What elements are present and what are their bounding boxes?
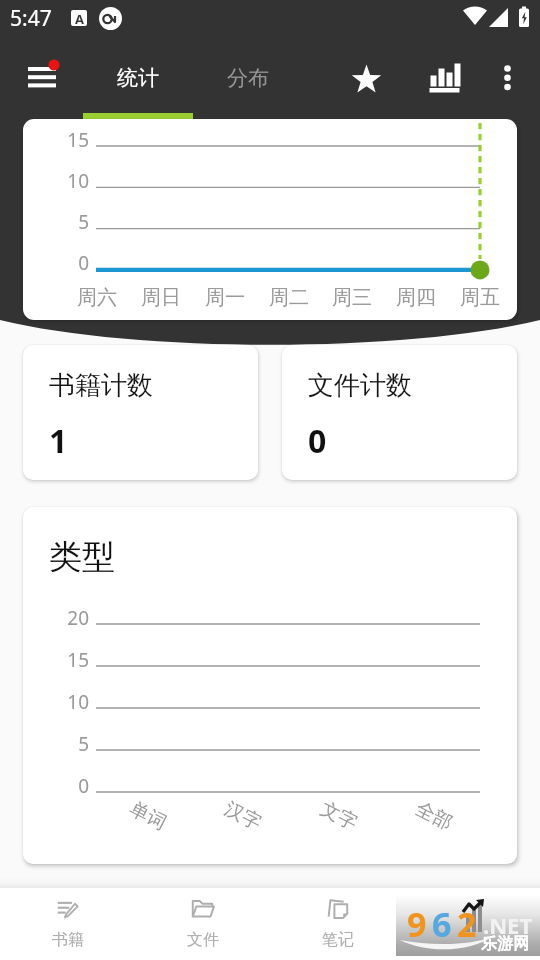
staticText: 乐游网 [481, 934, 529, 954]
staticText: 1 [49, 419, 68, 463]
staticText: 分布 [227, 65, 269, 91]
staticText: 类型 [49, 536, 115, 578]
staticText: 周日 [141, 285, 181, 310]
button[interactable]: Menu [18, 52, 66, 100]
staticText: 9 [407, 901, 427, 947]
button[interactable]: 15 [23, 119, 517, 320]
staticText: 10 [38, 689, 89, 715]
button[interactable]: Favorite [342, 54, 390, 102]
staticText: 文件 [187, 930, 219, 950]
staticText: 笔记 [322, 930, 354, 950]
staticText: 周五 [460, 285, 500, 310]
staticText: 周二 [269, 285, 309, 310]
button[interactable]: Statistics [420, 54, 468, 102]
staticText: 2 [457, 901, 477, 947]
button[interactable]: 笔记 [270, 888, 405, 960]
button[interactable]: 分布 [193, 42, 303, 113]
button[interactable]: 书籍计数 [23, 345, 258, 480]
button[interactable]: More options [483, 54, 531, 102]
staticText: 统计 [117, 65, 159, 91]
staticText: 0 [308, 419, 327, 463]
staticText: 0 [38, 773, 89, 799]
staticText: 文字 [317, 797, 361, 835]
staticText: 周三 [332, 285, 372, 310]
staticText: 文件计数 [308, 369, 412, 402]
staticText: 6 [432, 901, 452, 947]
button[interactable]: 书籍 [0, 888, 135, 960]
button[interactable]: 类型 [23, 507, 517, 864]
button[interactable]: 统计 [83, 42, 193, 113]
staticText: 0 [38, 250, 89, 276]
staticText: 5 [38, 731, 89, 757]
staticText: 单词 [126, 797, 170, 835]
staticText: 书籍计数 [49, 369, 153, 402]
button[interactable]: 文件计数 [282, 345, 517, 480]
staticText: 周四 [396, 285, 436, 310]
staticText: 10 [38, 168, 89, 194]
staticText: 周一 [205, 285, 245, 310]
staticText: A [75, 10, 84, 26]
button[interactable]: 文件 [135, 888, 270, 960]
staticText: .NET [483, 910, 533, 940]
staticText: 15 [38, 647, 89, 673]
staticText: 15 [38, 127, 89, 153]
staticText: 5 [38, 209, 89, 235]
staticText: 周六 [77, 285, 117, 310]
staticText: 书籍 [52, 930, 84, 950]
staticText: 全部 [412, 797, 456, 835]
button[interactable]: 统计 [405, 888, 540, 960]
staticText: 汉字 [221, 797, 265, 835]
staticText: 统计 [457, 930, 489, 950]
staticText: 5:47 [10, 4, 52, 33]
staticText: 20 [38, 605, 89, 631]
